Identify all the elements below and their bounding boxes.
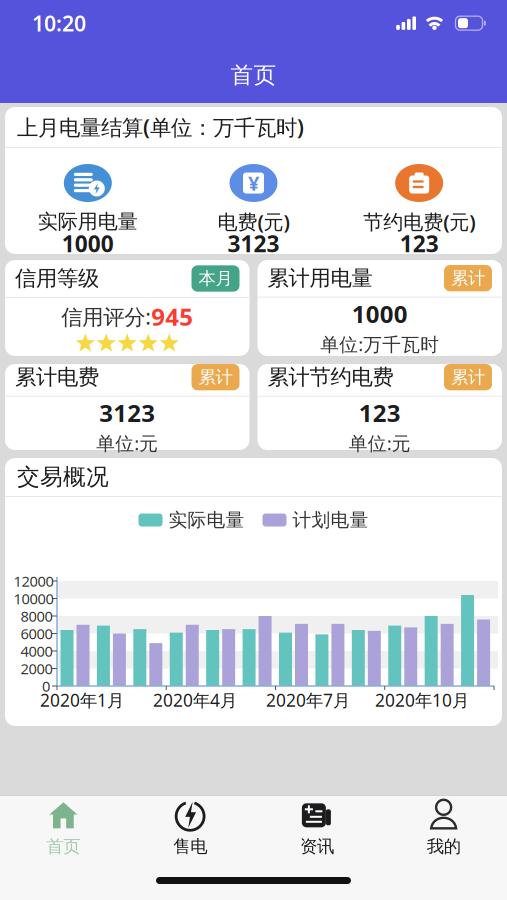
staticText: 0 — [42, 676, 50, 696]
staticText: ¥ — [248, 170, 259, 196]
staticText: 首页 — [46, 836, 80, 857]
staticText: 2020年7月 — [266, 688, 350, 711]
staticText: 4000 — [21, 641, 53, 661]
staticText: 累计节约电费 — [267, 364, 393, 390]
button[interactable]: 累计电费 — [5, 364, 249, 450]
staticText: 电费(元) — [217, 208, 289, 235]
staticText: 累计 — [451, 366, 485, 388]
staticText: 首页 — [230, 61, 276, 89]
staticText: 资讯 — [300, 836, 334, 857]
button[interactable]: 首页 — [0, 801, 127, 857]
staticText: 945 — [151, 301, 193, 332]
button[interactable]: 我的 — [380, 801, 507, 857]
staticText: 累计电费 — [15, 364, 99, 390]
staticText: 我的 — [427, 836, 461, 857]
button[interactable]: 资讯 — [253, 801, 380, 857]
staticText: 实际电量 — [168, 508, 244, 531]
staticText: 信用等级 — [15, 265, 99, 292]
staticText: 交易概况 — [17, 463, 109, 491]
staticText: 6000 — [21, 624, 53, 643]
button[interactable]: 信用等级 — [5, 260, 249, 356]
button[interactable]: 累计节约电费 — [257, 364, 502, 450]
staticText: 上月电量结算(单位：万千瓦时) — [17, 113, 304, 141]
staticText: 1000 — [62, 228, 114, 258]
button[interactable]: 售电 — [127, 801, 254, 857]
button[interactable]: 累计用电量 — [257, 260, 502, 356]
staticText: 1000 — [352, 298, 408, 330]
staticText: 累计用电量 — [267, 265, 372, 291]
staticText: 123 — [359, 397, 401, 429]
staticText: 累计 — [198, 366, 232, 388]
staticText: 3123 — [227, 228, 279, 258]
staticText: 3123 — [99, 397, 155, 429]
staticText: 2020年4月 — [153, 688, 237, 711]
staticText: 实际用电量 — [38, 209, 138, 234]
staticText: 节约电费(元) — [363, 208, 475, 235]
staticText: 2000 — [21, 659, 53, 678]
staticText: 10000 — [13, 589, 53, 608]
staticText: 8000 — [21, 606, 53, 626]
staticText: 计划电量 — [292, 508, 368, 531]
staticText: 累计 — [451, 267, 485, 289]
staticText: 单位:元 — [349, 430, 411, 455]
staticText: 2020年1月 — [40, 688, 124, 711]
staticText: 信用评分: — [61, 302, 151, 331]
staticText: 单位:万千瓦时 — [320, 331, 439, 356]
staticText: 本月 — [198, 268, 232, 289]
staticText: 2020年10月 — [375, 688, 469, 711]
staticText: 10:20 — [32, 9, 86, 37]
staticText: 12000 — [13, 571, 53, 591]
staticText: 售电 — [173, 836, 207, 857]
staticText: 123 — [400, 228, 439, 258]
staticText: 单位:元 — [96, 430, 158, 455]
